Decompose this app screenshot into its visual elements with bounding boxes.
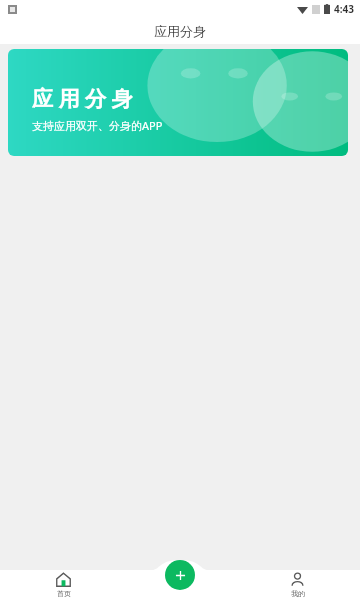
- button[interactable]: 我的: [272, 570, 322, 600]
- staticText: 应 用 分 身: [32, 84, 133, 113]
- staticText: 我的: [291, 589, 305, 598]
- button[interactable]: 应 用 分 身: [8, 49, 348, 156]
- staticText: 应用分身: [154, 23, 206, 39]
- button[interactable]: Add: [165, 560, 195, 590]
- staticText: 4:43: [334, 2, 354, 16]
- staticText: 支持应用双开、分身的APP: [32, 118, 163, 133]
- staticText: 首页: [57, 589, 71, 598]
- button[interactable]: 首页: [38, 570, 88, 600]
